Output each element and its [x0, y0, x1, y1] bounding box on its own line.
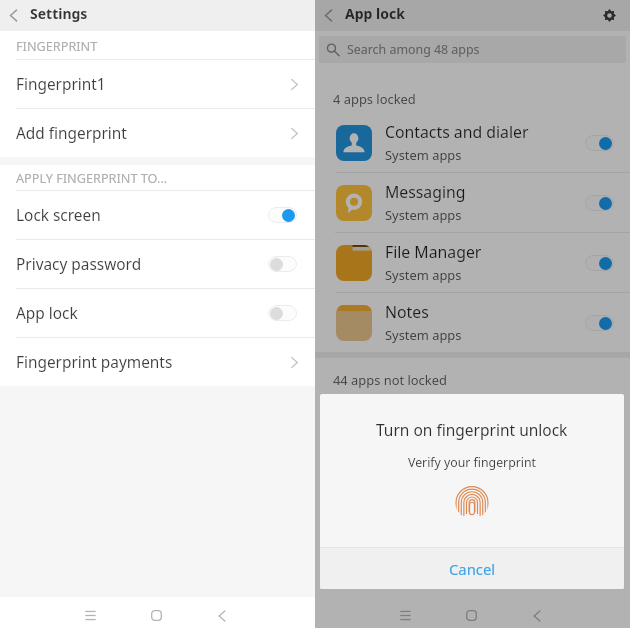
button[interactable]: Fingerprint1 [0, 60, 315, 108]
staticText: Fingerprint1 [16, 74, 106, 95]
button[interactable]: Privacy password [0, 240, 315, 288]
button[interactable]: Search among 48 apps [319, 36, 626, 63]
staticText: Lock screen [16, 205, 101, 226]
button[interactable]: Add fingerprint [0, 109, 315, 157]
staticText: Add fingerprint [16, 123, 127, 144]
staticText: System apps [385, 146, 462, 164]
staticText: System apps [385, 206, 462, 224]
button[interactable]: Fingerprint payments [0, 338, 315, 386]
staticText: Turn on fingerprint unlock [376, 419, 568, 440]
button[interactable]: Home [438, 600, 504, 628]
button[interactable]: Back [189, 600, 255, 628]
button[interactable]: Lock screen [0, 191, 315, 239]
staticText: Notes [385, 301, 429, 323]
staticText: App lock [345, 4, 405, 23]
button[interactable]: Recent apps [372, 600, 438, 628]
staticText: Privacy password [16, 254, 142, 275]
staticText: Verify your fingerprint [408, 454, 537, 471]
staticText: Search among 48 apps [347, 41, 480, 58]
staticText: Settings [30, 4, 88, 23]
staticText: System apps [385, 266, 462, 284]
staticText: APPLY FINGERPRINT TO… [16, 169, 168, 186]
staticText: Cancel [449, 559, 496, 579]
button[interactable]: Settings [589, 0, 630, 31]
button[interactable]: Snapseed [315, 404, 630, 463]
button[interactable]: Contacts and dialer [315, 113, 630, 172]
button[interactable]: Messaging [315, 173, 630, 232]
staticText: Messaging [385, 181, 466, 203]
button[interactable]: Navigate up [0, 0, 30, 31]
button[interactable]: Recent apps [57, 600, 123, 628]
button[interactable]: App lock [0, 289, 315, 337]
staticText: App lock [16, 303, 78, 324]
staticText: Snapseed [385, 412, 458, 434]
button[interactable]: Home [123, 600, 189, 628]
button[interactable]: File Manager [315, 233, 630, 292]
staticText: File Manager [385, 241, 482, 263]
staticText: System apps [385, 326, 462, 344]
staticText: Fingerprint payments [16, 352, 173, 373]
staticText: System apps [385, 437, 462, 455]
button[interactable]: Navigate up [315, 0, 345, 31]
staticText: 44 apps not locked [333, 371, 447, 389]
staticText: 4 apps locked [333, 90, 416, 108]
button[interactable]: Back [504, 600, 570, 628]
button[interactable]: Cancel [320, 548, 624, 589]
staticText: Contacts and dialer [385, 121, 529, 143]
staticText: FINGERPRINT [16, 37, 98, 54]
button[interactable]: Notes [315, 293, 630, 352]
